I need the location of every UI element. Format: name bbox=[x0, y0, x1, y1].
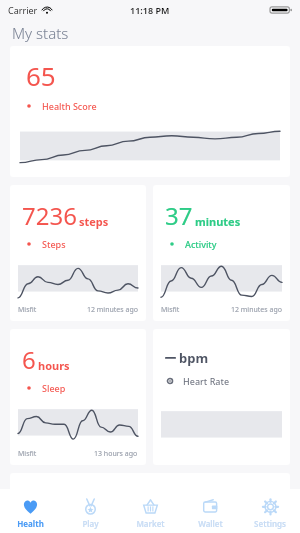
button[interactable]: Wallet bbox=[180, 494, 240, 529]
staticText: Misfit bbox=[161, 305, 180, 315]
staticText: bpm bbox=[179, 349, 209, 367]
button[interactable]: Settings bbox=[240, 494, 300, 529]
staticText: 11:18 PM bbox=[130, 4, 170, 16]
button[interactable]: Health bbox=[0, 494, 60, 529]
staticText: 12 minutes ago bbox=[231, 305, 282, 315]
button[interactable]: bpm bbox=[153, 329, 290, 465]
button[interactable]: 37 bbox=[153, 185, 290, 321]
staticText: 6 bbox=[22, 343, 36, 376]
staticText: Misfit bbox=[18, 305, 37, 315]
staticText: 37 bbox=[165, 199, 193, 232]
staticText: Health bbox=[17, 518, 44, 529]
staticText: steps bbox=[79, 214, 109, 229]
staticText: minutes bbox=[195, 214, 241, 229]
staticText: Carrier bbox=[8, 4, 38, 16]
staticText: 12 minutes ago bbox=[87, 305, 138, 315]
staticText: Misfit bbox=[18, 449, 37, 459]
staticText: 55 bbox=[26, 485, 56, 520]
staticText: Wallet bbox=[198, 518, 223, 529]
staticText: Heart Rate bbox=[183, 375, 230, 387]
button[interactable]: 7236 bbox=[10, 185, 146, 321]
staticText: Health Score bbox=[42, 100, 97, 112]
button[interactable]: 55 bbox=[10, 473, 290, 533]
staticText: Market bbox=[136, 518, 165, 529]
button[interactable]: Market bbox=[120, 494, 180, 529]
staticText: hours bbox=[38, 358, 70, 373]
staticText: 65 bbox=[26, 58, 56, 93]
staticText: Play bbox=[82, 518, 99, 529]
staticText: Settings bbox=[254, 518, 286, 529]
button[interactable]: 65 bbox=[10, 46, 290, 177]
button[interactable]: Play bbox=[60, 494, 120, 529]
staticText: Activity bbox=[185, 238, 217, 250]
staticText: 13 hours ago bbox=[94, 449, 138, 459]
staticText: 7236 bbox=[22, 199, 77, 232]
button[interactable]: 6 bbox=[10, 329, 146, 465]
staticText: My stats bbox=[12, 23, 69, 43]
staticText: Sleep bbox=[42, 382, 66, 394]
staticText: Steps bbox=[42, 238, 66, 250]
